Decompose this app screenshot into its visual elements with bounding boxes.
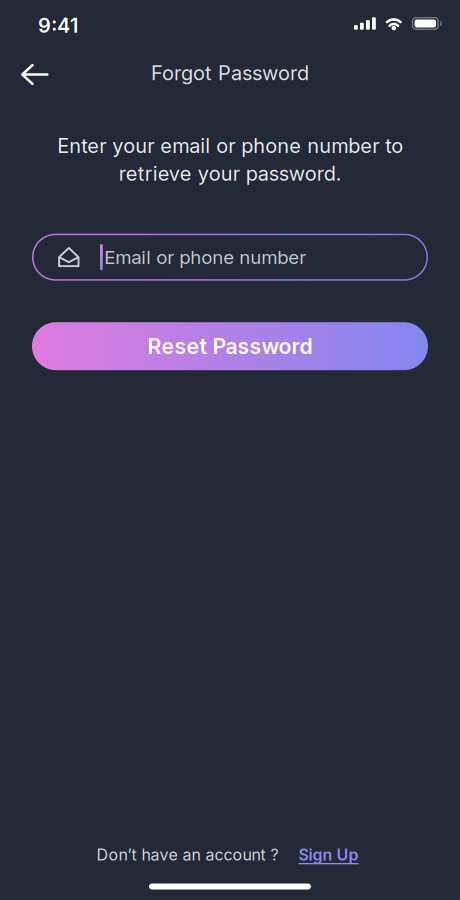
- staticText: Don’t have an account ?: [96, 845, 278, 864]
- button[interactable]: Back: [0, 54, 56, 88]
- button[interactable]: Email or phone number: [32, 234, 428, 281]
- staticText: Email or phone number: [104, 246, 306, 268]
- staticText: Reset Password: [147, 334, 312, 359]
- staticText: 9:41: [38, 14, 78, 37]
- staticText: Enter your email or phone number to retr…: [57, 134, 403, 185]
- button[interactable]: Sign Up: [298, 845, 358, 864]
- staticText: Forgot Password: [151, 61, 309, 85]
- staticText: Sign Up: [298, 845, 358, 864]
- button[interactable]: Reset Password: [32, 322, 428, 370]
